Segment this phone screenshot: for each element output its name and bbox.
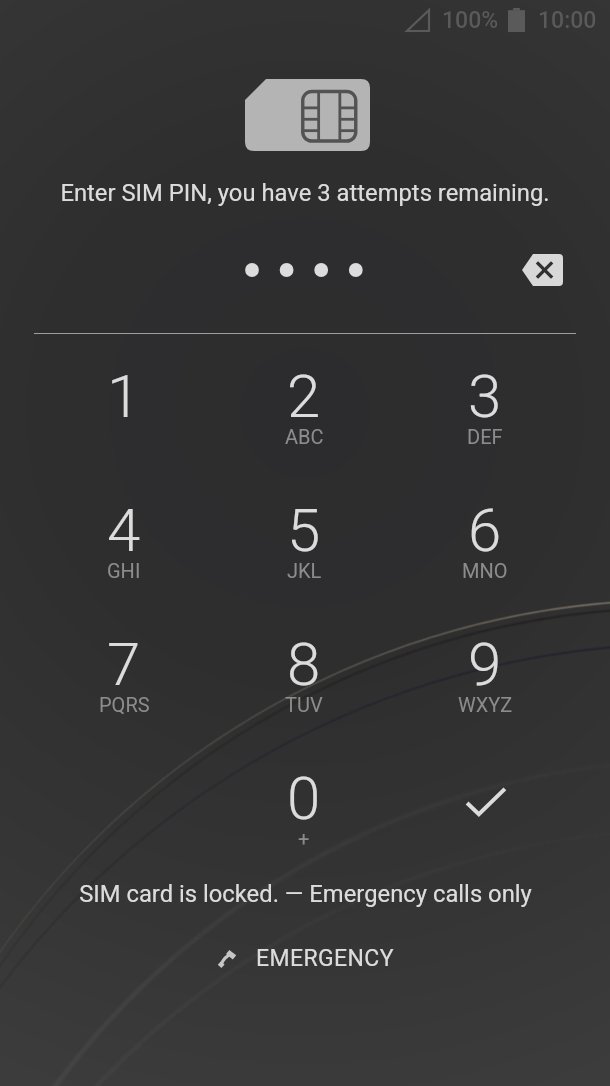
- staticText: TUV: [285, 693, 323, 716]
- staticText: Enter SIM PIN, you have 3 attempts remai…: [60, 179, 550, 207]
- staticText: 6: [468, 495, 502, 565]
- staticText: SIM card is locked. — Emergency calls on…: [79, 880, 532, 908]
- staticText: +: [298, 827, 310, 850]
- button[interactable]: 5: [214, 483, 394, 615]
- staticText: 0: [287, 763, 321, 833]
- staticText: 1: [107, 361, 141, 431]
- button[interactable]: Backspace: [512, 244, 573, 296]
- staticText: WXYZ: [458, 693, 513, 716]
- button[interactable]: EMERGENCY: [199, 935, 412, 982]
- staticText: EMERGENCY: [256, 945, 394, 972]
- button[interactable]: 2: [214, 349, 394, 481]
- staticText: 4: [107, 495, 141, 565]
- staticText: GHI: [107, 559, 141, 582]
- staticText: 100%: [442, 7, 499, 34]
- button[interactable]: 8: [214, 617, 394, 749]
- staticText: 2: [287, 361, 321, 431]
- staticText: 8: [287, 629, 321, 699]
- staticText: 5: [287, 495, 321, 565]
- staticText: 10:00: [538, 7, 597, 34]
- staticText: ABC: [285, 425, 324, 448]
- staticText: 9: [468, 629, 502, 699]
- other: SIM card: [245, 79, 370, 151]
- button[interactable]: 6: [395, 483, 575, 615]
- button[interactable]: 3: [395, 349, 575, 481]
- other: Mobile signal: [406, 9, 430, 32]
- staticText: 3: [468, 361, 502, 431]
- other: PIN, 4 digits entered: [245, 258, 375, 282]
- button[interactable]: 7: [34, 617, 214, 749]
- button[interactable]: 9: [395, 617, 575, 749]
- staticText: DEF: [467, 425, 503, 448]
- staticText: PQRS: [99, 693, 150, 716]
- button[interactable]: 4: [34, 483, 214, 615]
- button[interactable]: 1: [34, 349, 214, 481]
- staticText: MNO: [462, 559, 508, 582]
- staticText: JKL: [287, 559, 322, 582]
- button[interactable]: 0: [214, 751, 394, 883]
- other: Battery full: [508, 8, 525, 32]
- staticText: 7: [107, 629, 141, 699]
- button[interactable]: Enter PIN: [396, 742, 576, 864]
